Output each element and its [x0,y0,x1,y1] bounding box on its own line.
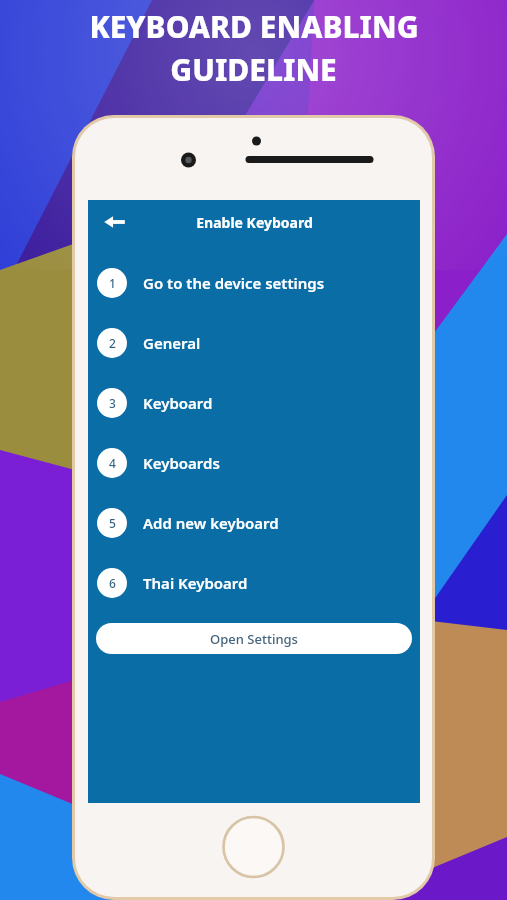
staticText: KEYBOARD ENABLING [89,6,419,47]
button[interactable]: Back [94,201,136,243]
staticText: Add new keyboard [143,513,279,533]
staticText: 6 [109,575,116,591]
button[interactable]: 5 [88,493,420,553]
staticText: Keyboard [143,393,213,413]
staticText: 3 [109,395,116,411]
staticText: Enable Keyboard [196,213,313,232]
staticText: Go to the device settings [143,273,325,293]
staticText: 2 [109,335,116,351]
button[interactable]: Open Settings [96,623,412,654]
staticText: Thai Keyboard [143,573,248,593]
staticText: Keyboards [143,453,220,473]
button[interactable]: 2 [88,313,420,373]
staticText: GUIDELINE [170,49,337,90]
staticText: Open Settings [210,630,298,648]
button[interactable]: 3 [88,373,420,433]
staticText: 1 [109,275,116,291]
staticText: 4 [109,455,116,471]
button[interactable]: 4 [88,433,420,493]
staticText: 5 [109,515,116,531]
staticText: General [143,333,201,353]
button[interactable]: 1 [88,253,420,313]
button[interactable]: 6 [88,553,420,613]
